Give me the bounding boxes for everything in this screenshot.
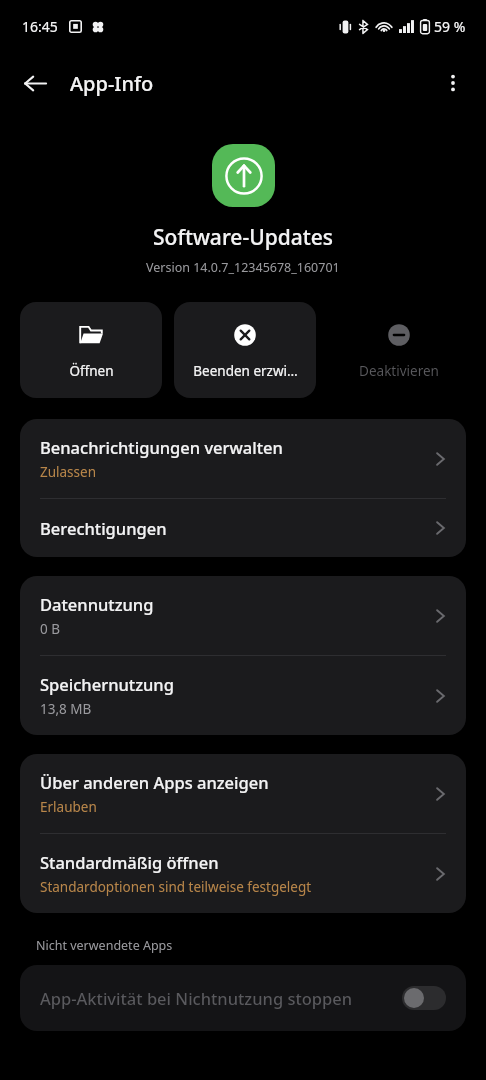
staticText: Öffnen [69,362,114,380]
button[interactable]: Über anderen Apps anzeigen [20,754,466,833]
staticText: App-Aktivität bei Nichtnutzung stoppen [40,987,402,1009]
staticText: Standardoptionen sind teilweise festgele… [40,878,312,896]
staticText: Benachrichtigungen verwalten [40,436,283,458]
button[interactable]: Zurück [12,60,58,106]
button[interactable]: Datennutzung [20,576,466,655]
staticText: Berechtigungen [40,517,167,539]
staticText: Über anderen Apps anzeigen [40,771,269,793]
button[interactable]: Weitere Optionen [430,60,476,106]
staticText: Zulassen [40,463,97,481]
button[interactable]: Benachrichtigungen verwalten [20,419,466,498]
staticText: App-Info [70,70,154,97]
staticText: Speichernutzung [40,673,174,695]
staticText: Version 14.0.7_12345678_160701 [146,259,340,276]
button[interactable]: Berechtigungen [20,499,466,557]
staticText: Nicht verwendete Apps [36,937,173,954]
button[interactable]: Öffnen [20,302,162,398]
staticText: Deaktivieren [359,362,439,380]
staticText: Software-Updates [153,223,333,252]
button[interactable]: Standardmäßig öffnen [20,834,466,913]
staticText: 0 B [40,620,61,638]
staticText: Standardmäßig öffnen [40,851,219,873]
staticText: 13,8 MB [40,700,92,718]
button: Deaktivieren [328,302,470,398]
staticText: Erlauben [40,798,97,816]
staticText: 59 % [434,17,466,36]
staticText: 16:45 [22,17,58,36]
button[interactable]: App-Aktivität bei Nichtnutzung stoppen [20,965,466,1031]
button[interactable]: Beenden erzwi… [174,302,316,398]
staticText: Beenden erzwi… [193,362,298,380]
staticText: Datennutzung [40,593,154,615]
button[interactable]: Speichernutzung [20,656,466,735]
